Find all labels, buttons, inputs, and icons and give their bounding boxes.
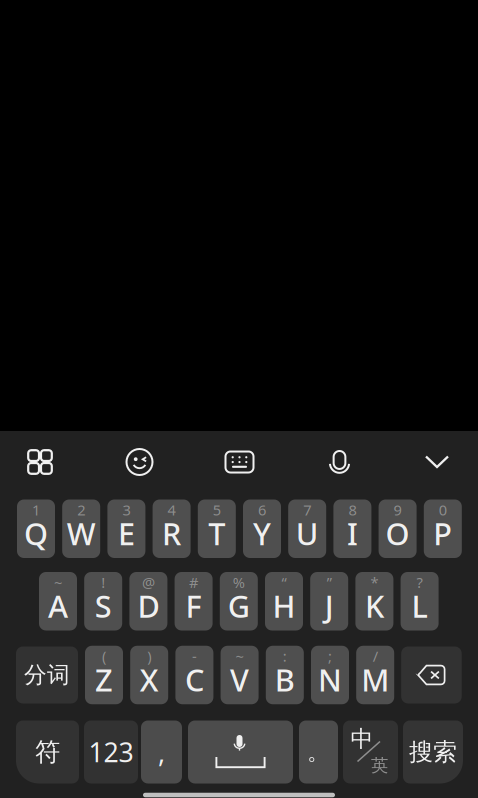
staticText: - xyxy=(192,646,197,666)
staticText: 分词 xyxy=(24,661,70,689)
staticText: ” xyxy=(327,572,332,592)
button[interactable]: ! xyxy=(84,572,122,630)
staticText: B xyxy=(275,659,295,700)
button[interactable]: ( xyxy=(85,646,123,704)
staticText: ~ xyxy=(236,646,244,666)
staticText: 8 xyxy=(348,500,356,519)
button[interactable]: Delete xyxy=(401,646,462,703)
staticText: J xyxy=(325,585,334,626)
button[interactable]: ” xyxy=(310,572,348,630)
button[interactable]: 8 xyxy=(333,499,371,558)
button[interactable]: 5 xyxy=(198,499,236,558)
staticText: P xyxy=(433,513,452,554)
staticText: 5 xyxy=(213,500,221,519)
button[interactable]: : xyxy=(266,646,304,704)
staticText: A xyxy=(48,585,68,626)
button[interactable]: ~ xyxy=(221,646,259,704)
staticText: R xyxy=(162,513,181,554)
staticText: N xyxy=(318,659,342,700)
staticText: D xyxy=(137,585,159,626)
button[interactable]: Switch Chinese English xyxy=(343,720,398,783)
staticText: ; xyxy=(328,646,332,666)
staticText: 7 xyxy=(303,500,311,519)
staticText: 搜索 xyxy=(409,737,457,767)
staticText: 123 xyxy=(88,734,133,770)
button[interactable]: 1 xyxy=(17,499,55,558)
staticText: % xyxy=(233,572,245,592)
button[interactable]: Voice input xyxy=(299,438,379,486)
staticText: 3 xyxy=(122,500,130,519)
staticText: @ xyxy=(142,572,155,592)
staticText: ? xyxy=(417,572,423,592)
staticText: 0 xyxy=(439,500,447,519)
button[interactable]: Keyboard settings xyxy=(199,438,279,486)
button[interactable]: Emoji xyxy=(99,438,179,486)
staticText: V xyxy=(230,659,249,700)
staticText: ~ xyxy=(54,572,62,592)
button[interactable]: 符 xyxy=(16,720,79,783)
staticText: 英 xyxy=(371,755,388,776)
button[interactable]: “ xyxy=(265,572,303,630)
staticText: I xyxy=(347,513,358,554)
staticText: 1 xyxy=(32,500,40,519)
button[interactable]: 分词 xyxy=(16,646,78,703)
staticText: S xyxy=(95,585,112,626)
staticText: 中 xyxy=(350,725,373,753)
button[interactable]: ~ xyxy=(39,572,77,630)
button[interactable]: Hide keyboard xyxy=(397,438,477,486)
button[interactable]: ) xyxy=(130,646,168,704)
button[interactable]: 2 xyxy=(62,499,100,558)
staticText: C xyxy=(185,659,204,700)
button[interactable]: % xyxy=(220,572,258,630)
staticText: * xyxy=(370,572,378,592)
button[interactable]: ? xyxy=(401,572,439,630)
staticText: F xyxy=(186,585,202,626)
staticText: G xyxy=(228,585,250,626)
button[interactable]: @ xyxy=(129,572,167,630)
staticText: L xyxy=(412,585,428,626)
button[interactable]: 搜索 xyxy=(403,720,463,783)
staticText: T xyxy=(208,513,225,554)
button[interactable]: 0 xyxy=(424,499,462,558)
staticText: H xyxy=(272,585,295,626)
staticText: ( xyxy=(102,646,106,666)
button[interactable]: Space xyxy=(188,720,293,783)
staticText: , xyxy=(158,734,165,770)
button[interactable]: # xyxy=(175,572,213,630)
staticText: 。 xyxy=(307,738,330,766)
staticText: / xyxy=(373,646,378,666)
staticText: 6 xyxy=(258,500,266,519)
staticText: Z xyxy=(95,659,113,700)
staticText: 符 xyxy=(35,736,60,767)
staticText: : xyxy=(283,646,287,666)
staticText: Q xyxy=(24,513,48,554)
button[interactable]: 4 xyxy=(153,499,191,558)
staticText: 9 xyxy=(394,500,402,519)
button[interactable]: , xyxy=(141,720,182,783)
button[interactable]: 3 xyxy=(107,499,145,558)
staticText: M xyxy=(361,659,389,700)
staticText: ! xyxy=(101,572,105,592)
staticText: U xyxy=(296,513,319,554)
button[interactable]: 。 xyxy=(299,720,338,783)
button[interactable]: 9 xyxy=(379,499,417,558)
staticText: ) xyxy=(147,646,151,666)
staticText: E xyxy=(118,513,135,554)
staticText: W xyxy=(67,513,96,554)
staticText: O xyxy=(386,513,410,554)
button[interactable]: 7 xyxy=(288,499,326,558)
button[interactable]: * xyxy=(355,572,393,630)
button[interactable]: 123 xyxy=(84,720,138,783)
button[interactable]: / xyxy=(356,646,394,704)
button[interactable]: - xyxy=(175,646,213,704)
staticText: 2 xyxy=(77,500,85,519)
button[interactable]: ; xyxy=(311,646,349,704)
staticText: 4 xyxy=(168,500,176,519)
button[interactable]: 6 xyxy=(243,499,281,558)
staticText: # xyxy=(189,572,198,592)
staticText: “ xyxy=(281,572,286,592)
staticText: Y xyxy=(253,513,271,554)
staticText: K xyxy=(365,585,384,626)
staticText: X xyxy=(140,659,159,700)
button[interactable]: Keyboard layouts xyxy=(0,438,80,486)
